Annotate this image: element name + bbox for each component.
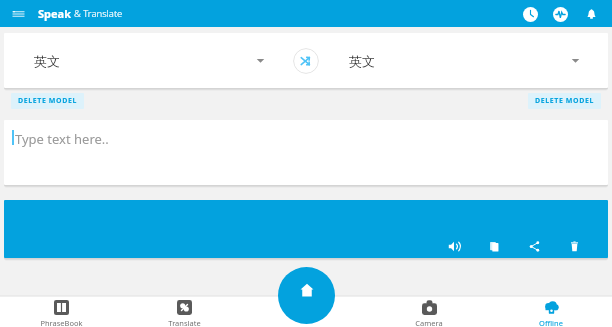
button[interactable]: Copy (482, 234, 506, 258)
staticText: DELETE MODEL (18, 96, 77, 106)
button[interactable]: 英文 (319, 33, 608, 88)
button[interactable]: Speak (442, 234, 466, 258)
button[interactable]: Share (522, 234, 546, 258)
staticText: Translate (168, 318, 201, 327)
staticText: 英文 (34, 53, 60, 69)
button[interactable]: Swap languages (293, 48, 319, 74)
staticText: Offline (539, 318, 563, 327)
button[interactable]: Offline (490, 296, 612, 327)
button[interactable]: 英文 (4, 33, 293, 88)
staticText: Speak (38, 6, 71, 21)
button[interactable]: History (519, 3, 541, 25)
staticText: DELETE MODEL (535, 96, 594, 106)
staticText: & Translate (74, 7, 123, 20)
button[interactable]: Home (278, 267, 335, 324)
button[interactable]: Camera (368, 296, 490, 327)
button[interactable]: DELETE MODEL (528, 93, 601, 109)
button[interactable]: DELETE MODEL (11, 93, 84, 109)
button[interactable]: Notifications (580, 3, 602, 25)
staticText: Camera (415, 318, 443, 327)
button[interactable]: Activity (549, 3, 571, 25)
button[interactable]: PhraseBook (0, 296, 123, 327)
button[interactable]: Delete (562, 234, 586, 258)
staticText: PhraseBook (40, 318, 83, 327)
button[interactable]: Menu (11, 7, 25, 21)
staticText: 英文 (349, 53, 375, 69)
button[interactable]: Translate (123, 296, 246, 327)
staticText: Type text here.. (15, 130, 109, 148)
